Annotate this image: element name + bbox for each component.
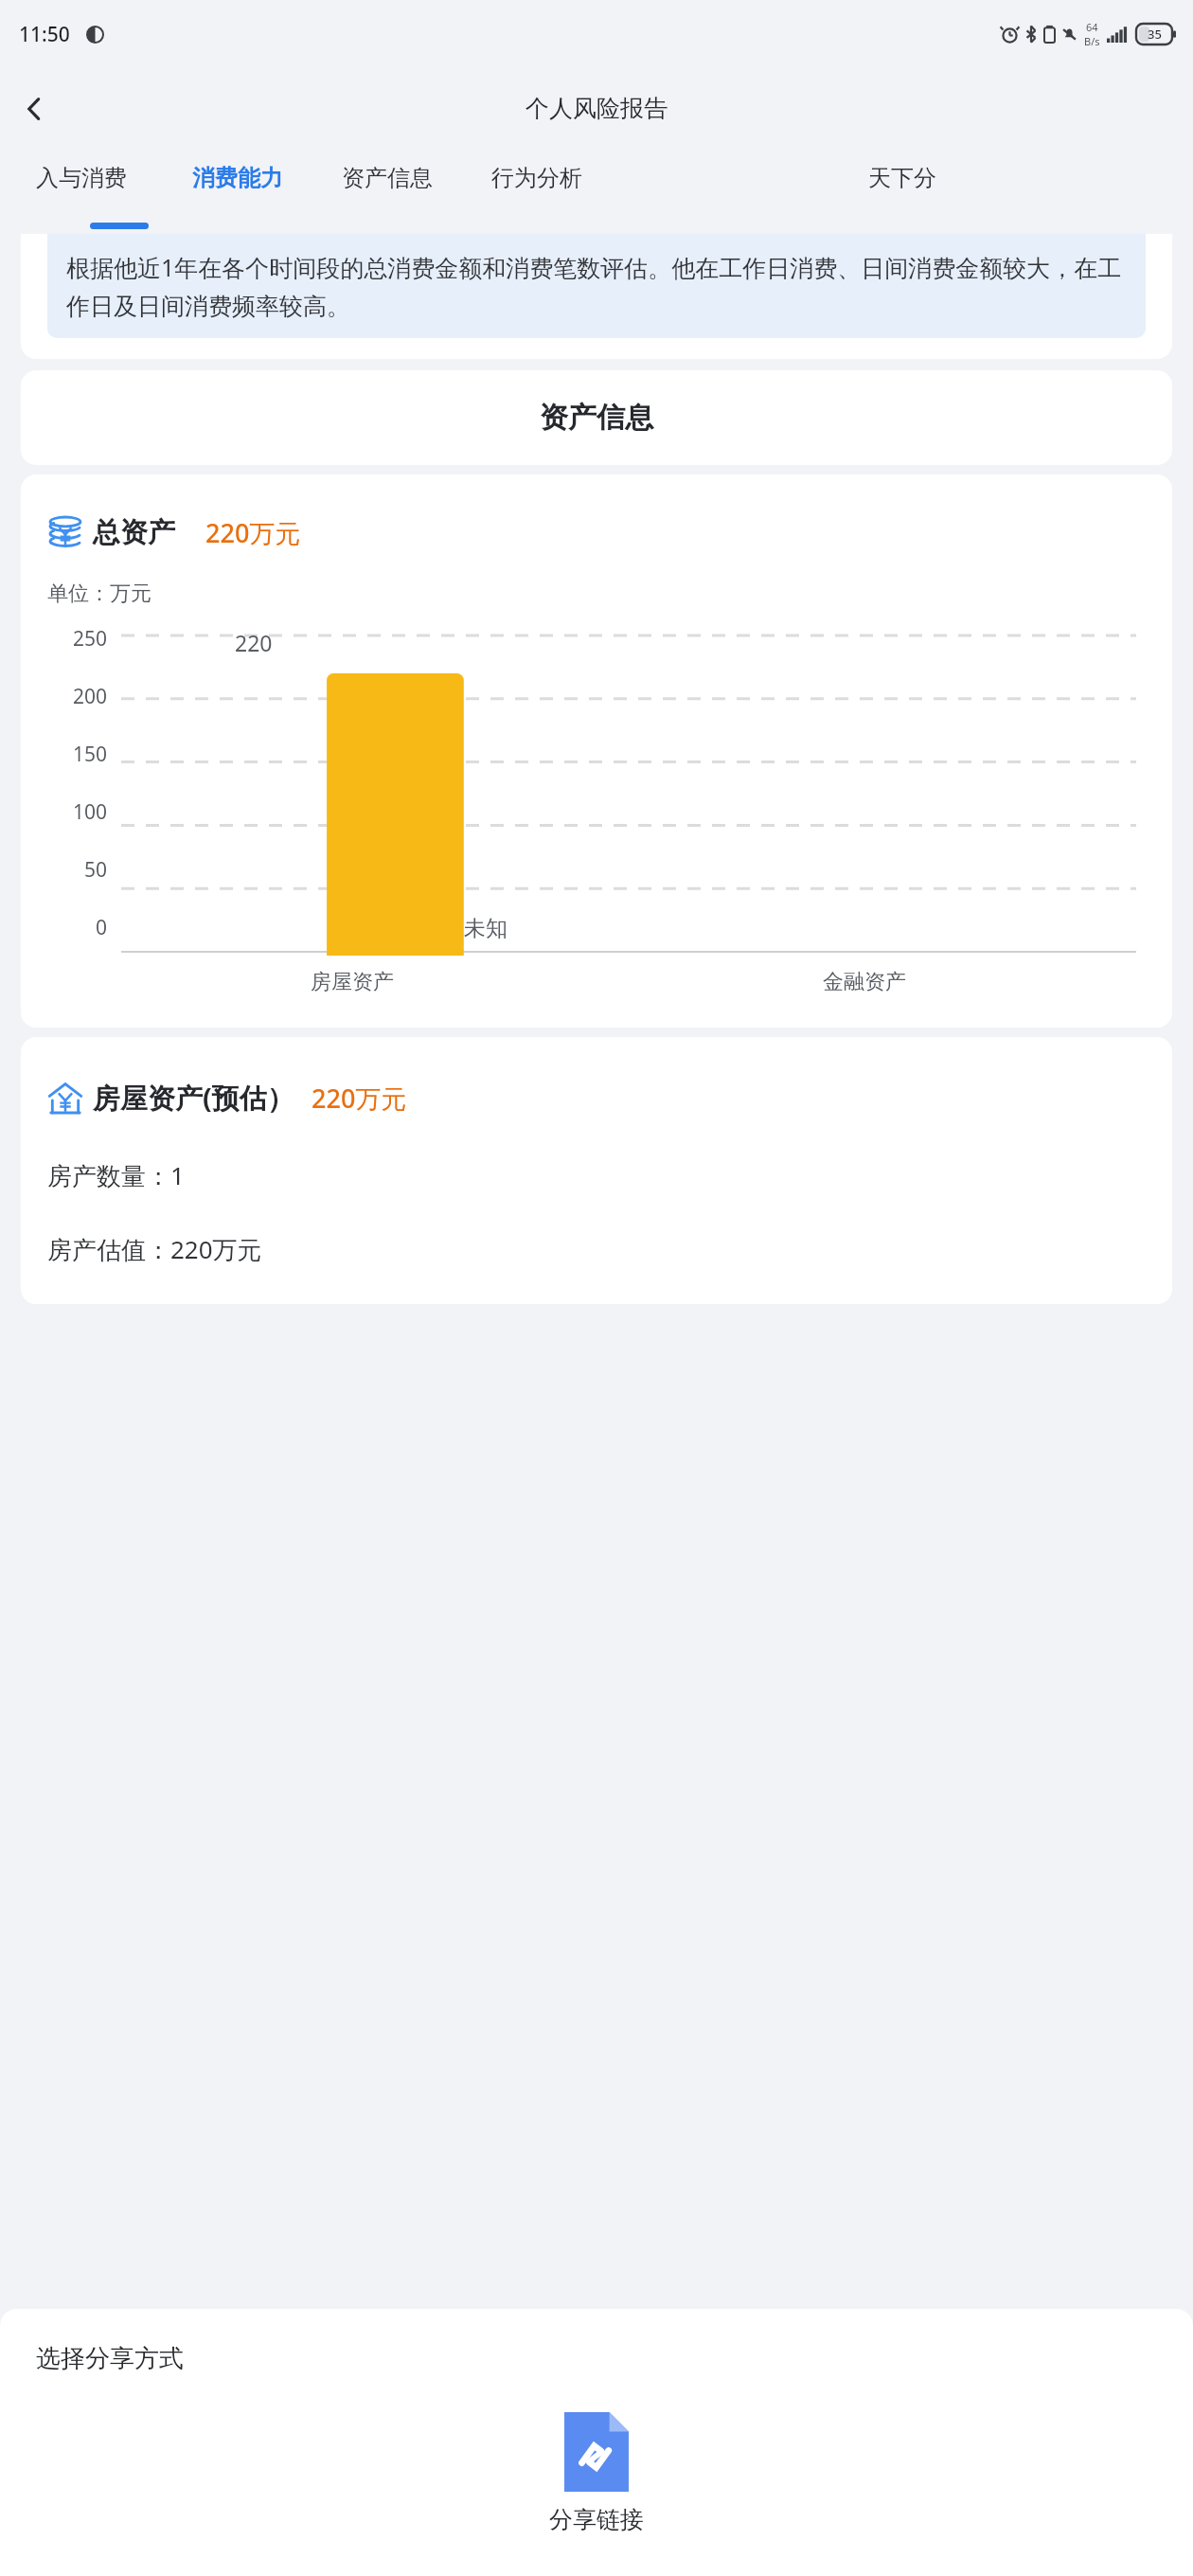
staticText: 选择分享方式 (36, 2343, 184, 2374)
staticText: 入与消费 (36, 164, 127, 192)
button[interactable]: 天下分 (612, 164, 1193, 234)
staticText: 未知 (464, 915, 507, 942)
button[interactable]: 消费能力 (163, 164, 312, 234)
staticText: 0 (96, 914, 108, 941)
staticText: 房屋资产 (311, 969, 394, 995)
staticText: 11:50 (19, 21, 70, 48)
button[interactable]: 资产信息 (312, 164, 462, 234)
button[interactable]: 行为分析 (462, 164, 612, 234)
button[interactable]: 分享链接 (526, 2408, 667, 2538)
staticText: 金融资产 (823, 969, 906, 995)
staticText: 64 (1086, 20, 1098, 34)
staticText: 50 (84, 856, 108, 884)
staticText: 220万元 (205, 515, 301, 550)
staticText: 根据他近1年在各个时间段的总消费金额和消费笔数评估。他在工作日消费、日间消费金额… (66, 251, 1127, 321)
staticText: 个人风险报告 (525, 94, 668, 123)
staticText: 房产估值：220万元 (47, 1232, 262, 1266)
staticText: 35 (1148, 26, 1162, 43)
staticText: 总资产 (93, 515, 175, 550)
staticText: 房屋资产(预估） (93, 1079, 294, 1117)
staticText: 分享链接 (549, 2505, 644, 2534)
staticText: 220万元 (312, 1081, 407, 1116)
staticText: 200 (73, 683, 108, 710)
staticText: 250 (73, 625, 108, 653)
staticText: 150 (73, 741, 108, 768)
staticText: 消费能力 (192, 164, 283, 192)
staticText: 行为分析 (491, 164, 582, 192)
staticText: 资产信息 (342, 164, 433, 192)
staticText: 资产信息 (540, 400, 653, 436)
staticText: B/s (1084, 34, 1100, 48)
staticText: 天下分 (868, 164, 936, 192)
staticText: 220 (235, 628, 273, 657)
button[interactable]: 入与消费 (0, 164, 163, 234)
staticText: 单位：万元 (47, 581, 151, 607)
button[interactable]: Back (8, 82, 61, 135)
staticText: 100 (73, 798, 108, 826)
staticText: 房产数量：1 (47, 1158, 185, 1192)
